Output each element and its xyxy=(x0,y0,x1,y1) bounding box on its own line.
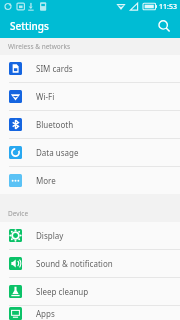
button[interactable]: Sound & notification xyxy=(0,250,180,278)
button[interactable]: More xyxy=(0,167,180,194)
staticText: Sleep cleanup xyxy=(36,286,89,297)
staticText: Display xyxy=(36,230,64,241)
staticText: 11:53 xyxy=(159,2,177,12)
button[interactable]: Display xyxy=(0,222,180,250)
button[interactable]: SIM cards xyxy=(0,55,180,83)
staticText: Sound & notification xyxy=(36,258,113,269)
staticText: Data usage xyxy=(36,147,79,158)
staticText: Wi-Fi xyxy=(36,91,55,102)
staticText: Settings xyxy=(10,19,49,33)
staticText: Wireless & networks xyxy=(8,42,70,51)
staticText: Apps xyxy=(36,308,55,319)
button[interactable]: Apps xyxy=(0,306,180,320)
staticText: Bluetooth xyxy=(36,119,74,130)
staticText: SIM cards xyxy=(36,63,73,74)
button[interactable]: Bluetooth xyxy=(0,111,180,139)
staticText: Device xyxy=(8,209,29,218)
button[interactable]: Search xyxy=(154,16,174,36)
button[interactable]: Data usage xyxy=(0,139,180,167)
button[interactable]: Wi-Fi xyxy=(0,83,180,111)
staticText: More xyxy=(36,175,56,186)
button[interactable]: Sleep cleanup xyxy=(0,278,180,306)
